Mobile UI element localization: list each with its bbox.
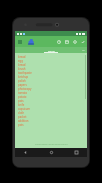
staticText: polish (18, 79, 26, 83)
button[interactable]: ketchup (18, 75, 87, 79)
button[interactable]: All (82, 49, 85, 52)
staticText: ketchup (18, 75, 29, 79)
staticText: pots (18, 99, 24, 103)
button[interactable]: packet (18, 115, 87, 119)
staticText: bread (18, 63, 26, 67)
staticText: bread (18, 55, 26, 59)
button[interactable]: brush (18, 67, 87, 71)
button[interactable]: cloth (18, 111, 87, 115)
button[interactable]: Settings (72, 39, 78, 45)
staticText: toothpaste (18, 71, 32, 75)
button[interactable]: tomato (18, 91, 87, 95)
button[interactable]: Items (43, 47, 59, 53)
staticText: capsicum (18, 107, 30, 111)
button[interactable]: addition (18, 119, 87, 123)
button[interactable]: Back (22, 149, 29, 156)
staticText: tomato (18, 91, 28, 95)
staticText: photocopy (18, 87, 32, 91)
staticText: Items (48, 49, 55, 52)
button[interactable]: History (56, 39, 62, 45)
button[interactable]: Done (80, 39, 86, 45)
button[interactable]: App logo (26, 37, 35, 46)
button[interactable]: photocopy (18, 87, 87, 91)
staticText: Some items can be from the list (35, 143, 68, 146)
button[interactable]: bread (18, 55, 87, 59)
button[interactable]: Home (48, 149, 55, 156)
button[interactable]: pots (18, 99, 87, 103)
button[interactable]: pots (18, 123, 87, 127)
button[interactable]: Recents (73, 149, 80, 156)
button[interactable]: capsicum (18, 107, 87, 111)
button[interactable]: knife (18, 103, 87, 107)
button[interactable]: toothpaste (18, 71, 87, 75)
staticText: cloth (18, 111, 25, 115)
staticText: All (82, 49, 85, 52)
staticText: brush (18, 67, 26, 71)
staticText: addition (18, 119, 29, 123)
staticText: papers (18, 83, 27, 87)
button[interactable]: potato (18, 95, 87, 99)
staticText: potato (18, 95, 27, 99)
staticText: knife (18, 103, 25, 107)
button[interactable]: papers (18, 83, 87, 87)
staticText: egg (18, 59, 23, 63)
button[interactable]: Grid view (64, 39, 70, 45)
button[interactable]: bread (18, 63, 87, 67)
button[interactable]: polish (18, 79, 87, 83)
button[interactable]: egg (18, 59, 87, 63)
staticText: pots (18, 123, 24, 127)
staticText: packet (18, 115, 27, 119)
button[interactable]: Menu (17, 39, 23, 45)
